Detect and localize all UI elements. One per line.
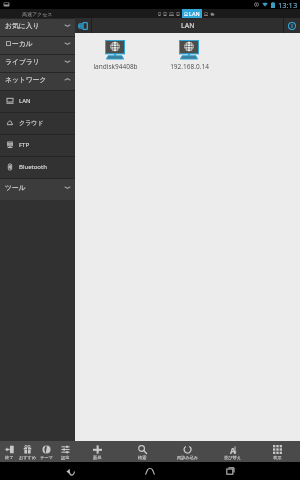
button[interactable]: Tab <box>163 9 167 18</box>
staticText: クラウド <box>19 119 44 127</box>
staticText: 表示 <box>273 455 282 460</box>
button[interactable]: LAN <box>0 90 75 112</box>
button[interactable]: Home <box>140 462 160 480</box>
staticText: 終了 <box>5 455 14 460</box>
staticText: Bluetooth <box>19 163 47 171</box>
staticText: ネットワーク <box>5 75 47 84</box>
staticText: ライブラリ <box>5 57 40 66</box>
button[interactable]: ネットワーク <box>0 72 75 90</box>
button[interactable]: 再読み込み <box>165 441 210 462</box>
staticText: 13:13 <box>278 0 298 9</box>
button[interactable]: ツール <box>0 178 75 200</box>
button[interactable]: ライブラリ <box>0 54 75 72</box>
button[interactable]: おすすめ <box>18 441 37 462</box>
button[interactable]: 設定 <box>56 441 75 462</box>
staticText: 設定 <box>61 455 70 460</box>
staticText: 並び替え <box>224 455 241 460</box>
staticText: 192.168.0.14 <box>170 62 209 71</box>
button[interactable]: テーマ <box>37 441 56 462</box>
staticText: お気に入り <box>5 21 40 30</box>
button[interactable]: Back <box>60 462 80 480</box>
button[interactable]: 表示 <box>255 441 300 462</box>
button[interactable]: Tab <box>176 9 180 18</box>
staticText: おすすめ <box>19 455 37 460</box>
button[interactable]: 検索 <box>120 441 165 462</box>
staticText: 新規 <box>93 455 102 460</box>
button[interactable]: Bluetooth <box>0 156 75 178</box>
staticText: LAN <box>19 97 31 105</box>
button[interactable]: A <box>210 441 255 462</box>
button[interactable]: Recent apps <box>220 462 240 480</box>
button[interactable]: LAN <box>92 18 283 33</box>
button[interactable]: landisk94408b <box>78 40 152 71</box>
staticText: LAN <box>181 21 195 31</box>
staticText: landisk94408b <box>93 62 138 71</box>
button[interactable]: Tab <box>210 9 215 18</box>
button[interactable]: 終了 <box>0 441 18 462</box>
button[interactable]: 192.168.0.14 <box>152 40 226 71</box>
button[interactable]: Close tab <box>284 18 300 33</box>
button[interactable]: ローカル <box>0 36 75 54</box>
staticText: A <box>230 445 236 454</box>
staticText: FTP <box>19 141 30 149</box>
button[interactable]: Split view <box>75 18 91 33</box>
staticText: ツール <box>5 183 26 192</box>
button[interactable]: FTP <box>0 134 75 156</box>
button[interactable]: Tab <box>169 9 174 18</box>
staticText: LAN <box>189 10 200 17</box>
button[interactable]: クラウド <box>0 112 75 134</box>
button[interactable]: 新規 <box>75 441 120 462</box>
staticText: テーマ <box>40 455 53 460</box>
staticText: 検索 <box>138 455 147 460</box>
staticText: 再読み込み <box>177 455 199 460</box>
staticText: ローカル <box>5 39 33 48</box>
button[interactable]: Tab <box>204 9 208 18</box>
button[interactable]: LAN <box>182 9 202 18</box>
button[interactable]: お気に入り <box>0 18 75 36</box>
staticText: 高速アクセス <box>22 11 53 17</box>
button[interactable]: Tab <box>158 9 161 18</box>
